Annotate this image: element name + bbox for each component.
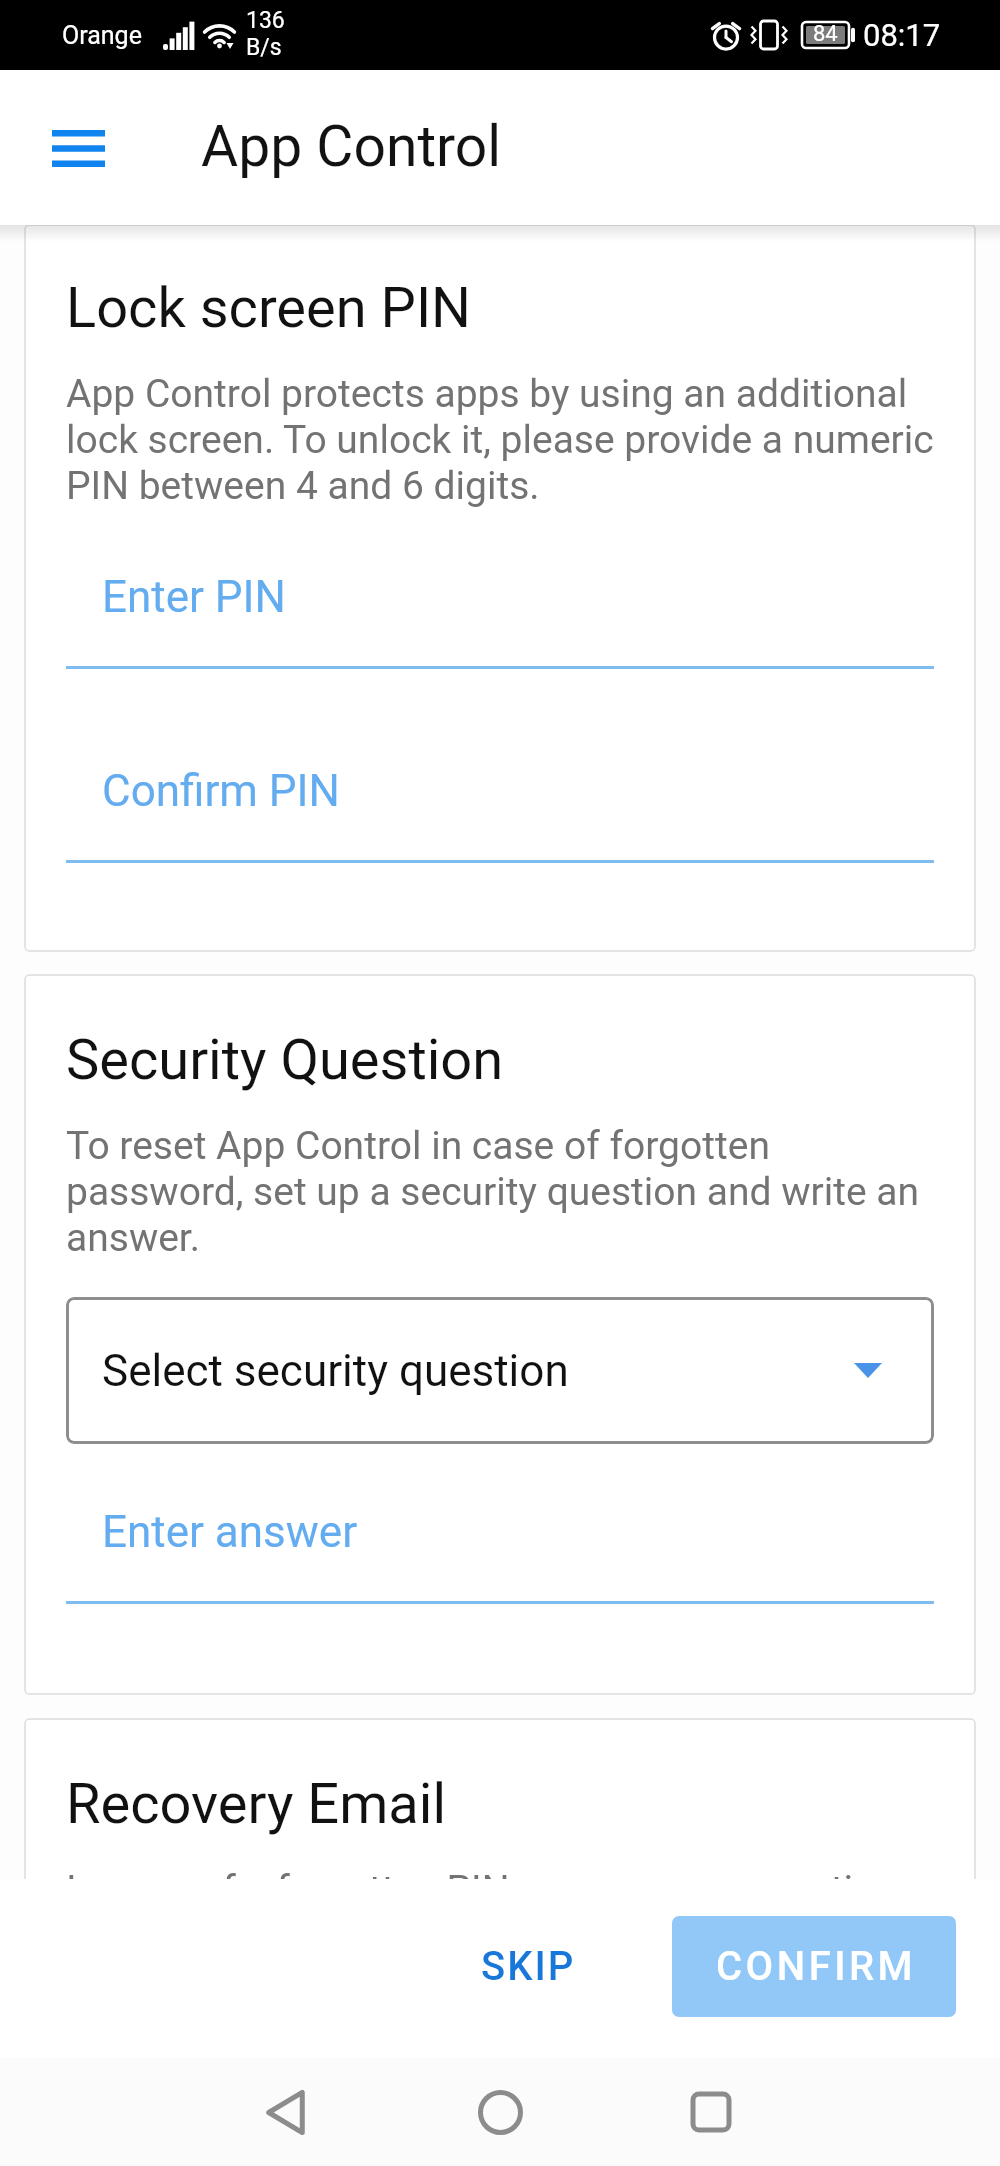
button[interactable]: CONFIRM [672, 1916, 956, 2017]
staticText: App Control protects apps by using an ad… [66, 371, 934, 509]
button[interactable]: Confirm PIN [66, 765, 934, 863]
staticText: SKIP [481, 1943, 576, 1990]
button[interactable]: Enter answer [66, 1506, 934, 1604]
staticText: Confirm PIN [102, 765, 340, 817]
button[interactable]: Open navigation drawer [26, 96, 130, 200]
staticText: Orange [62, 21, 142, 50]
staticText: Select security question [102, 1345, 569, 1397]
staticText: To reset App Control in case of forgotte… [66, 1123, 934, 1261]
staticText: 84 [813, 21, 838, 47]
button[interactable]: Back [235, 2062, 335, 2162]
button[interactable]: Select security question [66, 1297, 934, 1444]
staticText: In case of a forgotten PIN, use a recove… [66, 1867, 934, 2005]
staticText: Lock screen PIN [66, 275, 472, 341]
staticText: B/s [246, 34, 282, 61]
button[interactable]: Enter PIN [66, 571, 934, 669]
button[interactable]: SKIP [451, 1917, 606, 2016]
staticText: 136 [246, 7, 285, 34]
staticText: Recovery Email [66, 1771, 446, 1837]
staticText: 08:17 [863, 17, 941, 53]
staticText: Security Question [66, 1027, 504, 1093]
button[interactable]: Home [450, 2062, 550, 2162]
staticText: App Control [201, 113, 502, 180]
staticText: CONFIRM [716, 1943, 916, 1990]
staticText: Enter answer [102, 1506, 358, 1558]
button[interactable]: Recent apps [661, 2062, 761, 2162]
staticText: Enter PIN [102, 571, 286, 623]
